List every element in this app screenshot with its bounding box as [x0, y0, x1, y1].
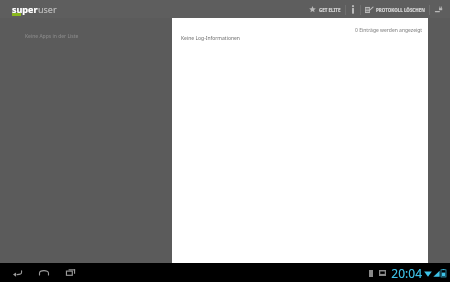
- staticText: super: [12, 3, 38, 15]
- staticText: 0 Einträge werden angezeigt: [355, 27, 423, 34]
- staticText: Keine Log-Informationen: [181, 35, 240, 42]
- button[interactable]: super: [12, 3, 57, 15]
- button[interactable]: PROTOKOLL LÖSCHEN: [361, 4, 429, 16]
- staticText: Keine Apps in der Liste: [25, 33, 79, 40]
- button[interactable]: More options: [430, 4, 448, 15]
- staticText: GET ELITE: [319, 7, 341, 13]
- staticText: user: [38, 3, 57, 15]
- button[interactable]: GET ELITE: [305, 4, 345, 15]
- button[interactable]: Recent apps: [61, 264, 80, 281]
- button[interactable]: Status: [369, 265, 446, 281]
- button[interactable]: Info: [346, 3, 360, 16]
- staticText: 20:04: [391, 265, 422, 281]
- staticText: PROTOKOLL LÖSCHEN: [376, 7, 425, 13]
- button[interactable]: Home: [34, 264, 54, 281]
- button[interactable]: Back: [8, 264, 27, 281]
